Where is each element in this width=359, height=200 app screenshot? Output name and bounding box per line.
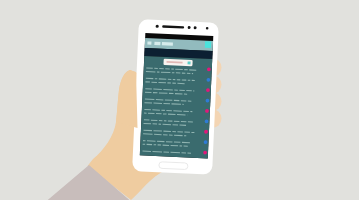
button[interactable] [0,0,359,200]
